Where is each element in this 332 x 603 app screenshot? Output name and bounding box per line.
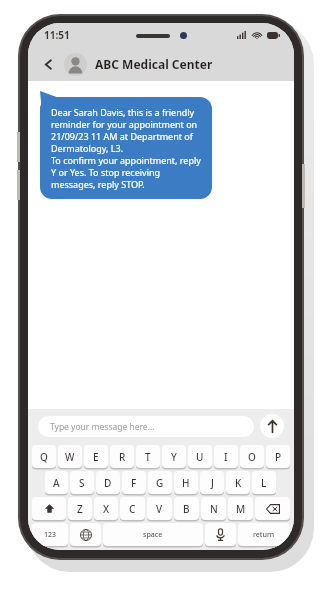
button[interactable]: C: [120, 497, 145, 520]
button[interactable]: Type your message here...: [38, 416, 254, 437]
button[interactable]: E: [84, 445, 108, 468]
staticText: H: [182, 476, 190, 490]
button[interactable]: T: [136, 445, 160, 468]
button[interactable]: R: [110, 445, 134, 468]
staticText: M: [236, 502, 246, 516]
button[interactable]: Z: [68, 497, 92, 520]
button[interactable]: Backspace: [255, 497, 290, 520]
button[interactable]: Dear Sarah Davis, this is a friendly: [40, 97, 212, 199]
button[interactable]: K: [226, 471, 250, 494]
button[interactable]: Contact avatar: [64, 53, 87, 76]
button[interactable]: Back: [38, 54, 58, 74]
button[interactable]: Shift: [32, 497, 66, 520]
staticText: W: [65, 450, 75, 464]
staticText: Dear Sarah Davis, this is a friendly: [51, 106, 195, 118]
staticText: A: [53, 476, 60, 490]
button[interactable]: V: [147, 497, 172, 520]
staticText: U: [196, 450, 204, 464]
button[interactable]: space: [103, 523, 203, 546]
button[interactable]: Change keyboard: [70, 523, 101, 546]
staticText: Z: [77, 502, 83, 516]
staticText: K: [235, 476, 242, 490]
staticText: 21/09/23 11 AM at Department of: [51, 130, 193, 142]
staticText: Type your message here...: [50, 421, 155, 433]
button[interactable]: N: [201, 497, 226, 520]
button[interactable]: I: [214, 445, 238, 468]
staticText: C: [129, 502, 136, 516]
staticText: I: [224, 450, 228, 464]
button[interactable]: P: [266, 445, 290, 468]
staticText: Dermatology, L3.: [51, 142, 124, 154]
staticText: space: [143, 530, 163, 540]
button[interactable]: 123: [32, 523, 68, 546]
button[interactable]: Send: [260, 414, 284, 438]
staticText: messages, reply STOP.: [51, 178, 145, 190]
button[interactable]: O: [240, 445, 264, 468]
button[interactable]: A: [45, 471, 68, 494]
button[interactable]: J: [200, 471, 224, 494]
staticText: 123: [44, 530, 57, 540]
button[interactable]: M: [228, 497, 253, 520]
button[interactable]: S: [70, 471, 94, 494]
staticText: reminder for your appointment on: [51, 118, 198, 130]
staticText: To confirm your appointment, reply: [51, 154, 201, 166]
button[interactable]: Q: [32, 445, 56, 468]
staticText: E: [93, 450, 99, 464]
staticText: J: [211, 476, 214, 490]
staticText: N: [210, 502, 218, 516]
staticText: D: [104, 476, 112, 490]
button[interactable]: Voice input: [205, 523, 236, 546]
staticText: S: [79, 476, 85, 490]
staticText: Y or Yes. To stop receiving: [51, 166, 161, 178]
staticText: ABC Medical Center: [95, 56, 213, 72]
staticText: return: [253, 530, 275, 540]
button[interactable]: H: [174, 471, 198, 494]
staticText: F: [131, 476, 137, 490]
staticText: B: [183, 502, 190, 516]
button[interactable]: L: [252, 471, 276, 494]
staticText: 11:51: [44, 28, 70, 42]
button[interactable]: F: [122, 471, 146, 494]
staticText: L: [261, 476, 267, 490]
staticText: V: [156, 502, 163, 516]
button[interactable]: return: [238, 523, 290, 546]
staticText: O: [248, 450, 256, 464]
button[interactable]: B: [174, 497, 199, 520]
button[interactable]: G: [148, 471, 172, 494]
staticText: R: [119, 450, 126, 464]
button[interactable]: D: [96, 471, 120, 494]
staticText: T: [145, 450, 151, 464]
button[interactable]: Y: [162, 445, 186, 468]
button[interactable]: X: [94, 497, 118, 520]
button[interactable]: U: [188, 445, 212, 468]
staticText: P: [275, 450, 282, 464]
staticText: X: [103, 502, 110, 516]
staticText: Q: [40, 450, 48, 464]
button[interactable]: W: [58, 445, 82, 468]
staticText: Y: [171, 450, 177, 464]
staticText: G: [156, 476, 164, 490]
